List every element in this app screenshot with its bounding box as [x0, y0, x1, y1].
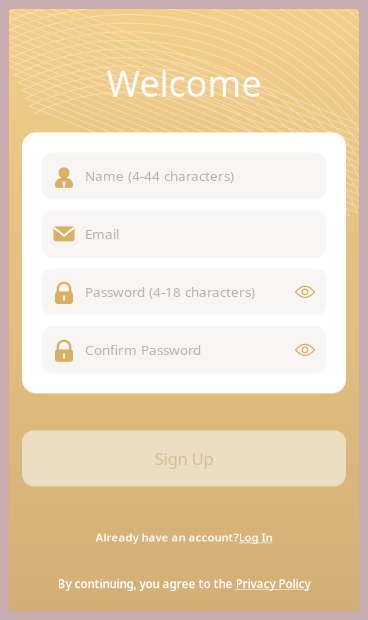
staticText: By continuing, you agree to the Privacy … [57, 576, 310, 592]
button[interactable]: Email [42, 210, 326, 257]
button[interactable]: Name (4-44 characters) [42, 152, 326, 199]
button[interactable]: Confirm Password [42, 326, 326, 373]
staticText: Name (4-44 characters) [85, 167, 234, 185]
staticText: Sign Up [154, 447, 213, 470]
staticText: Email [85, 225, 119, 243]
button[interactable]: Password (4-18 characters) [42, 268, 326, 315]
staticText: Password (4-18 characters) [85, 283, 255, 301]
button[interactable]: Sign Up [22, 430, 346, 486]
button[interactable]: By continuing, you agree to the Privacy … [49, 571, 318, 597]
button[interactable]: Already have an account?Log In [87, 524, 280, 550]
button[interactable]: Show password [294, 331, 326, 369]
staticText: Already have an account?Log In [95, 529, 272, 545]
staticText: Welcome [106, 59, 261, 107]
button[interactable]: Show password [294, 273, 326, 311]
staticText: Confirm Password [85, 341, 201, 359]
